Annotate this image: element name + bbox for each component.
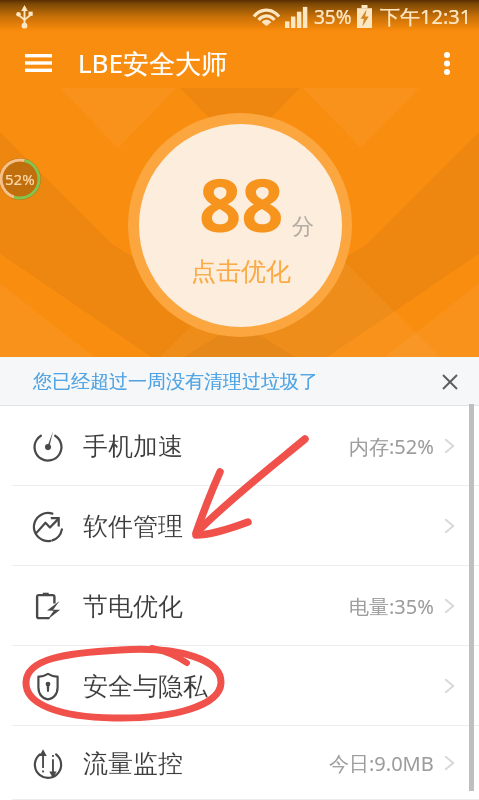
staticText: 分 xyxy=(292,213,314,241)
button[interactable]: 安全与隐私 xyxy=(0,646,479,726)
staticText: 您已经超过一周没有清理过垃圾了 xyxy=(33,370,318,394)
button[interactable]: 流量监控 xyxy=(0,726,479,800)
staticText: LBE安全大师 xyxy=(78,45,227,81)
staticText: 下午12:31 xyxy=(380,3,472,30)
staticText: 35% xyxy=(314,4,352,30)
staticText: 88 xyxy=(199,153,284,254)
staticText: 今日:9.0MB xyxy=(329,750,434,777)
staticText: 点击优化 xyxy=(191,256,291,287)
button[interactable]: 52% xyxy=(0,156,43,202)
staticText: 流量监控 xyxy=(83,748,183,779)
staticText: 手机加速 xyxy=(83,431,183,462)
button[interactable]: 88 xyxy=(128,113,352,337)
button[interactable]: Open navigation menu xyxy=(15,40,61,86)
button[interactable]: More options xyxy=(424,40,470,86)
button[interactable]: 手机加速 xyxy=(0,406,479,486)
button[interactable]: 节电优化 xyxy=(0,566,479,646)
button[interactable]: Dismiss notice xyxy=(432,364,468,400)
staticText: 电量:35% xyxy=(349,593,434,620)
staticText: 安全与隐私 xyxy=(83,671,208,702)
staticText: 52% xyxy=(5,169,35,189)
staticText: 节电优化 xyxy=(83,591,183,622)
staticText: 软件管理 xyxy=(83,511,183,542)
staticText: 内存:52% xyxy=(349,433,434,460)
button[interactable]: 软件管理 xyxy=(0,486,479,566)
